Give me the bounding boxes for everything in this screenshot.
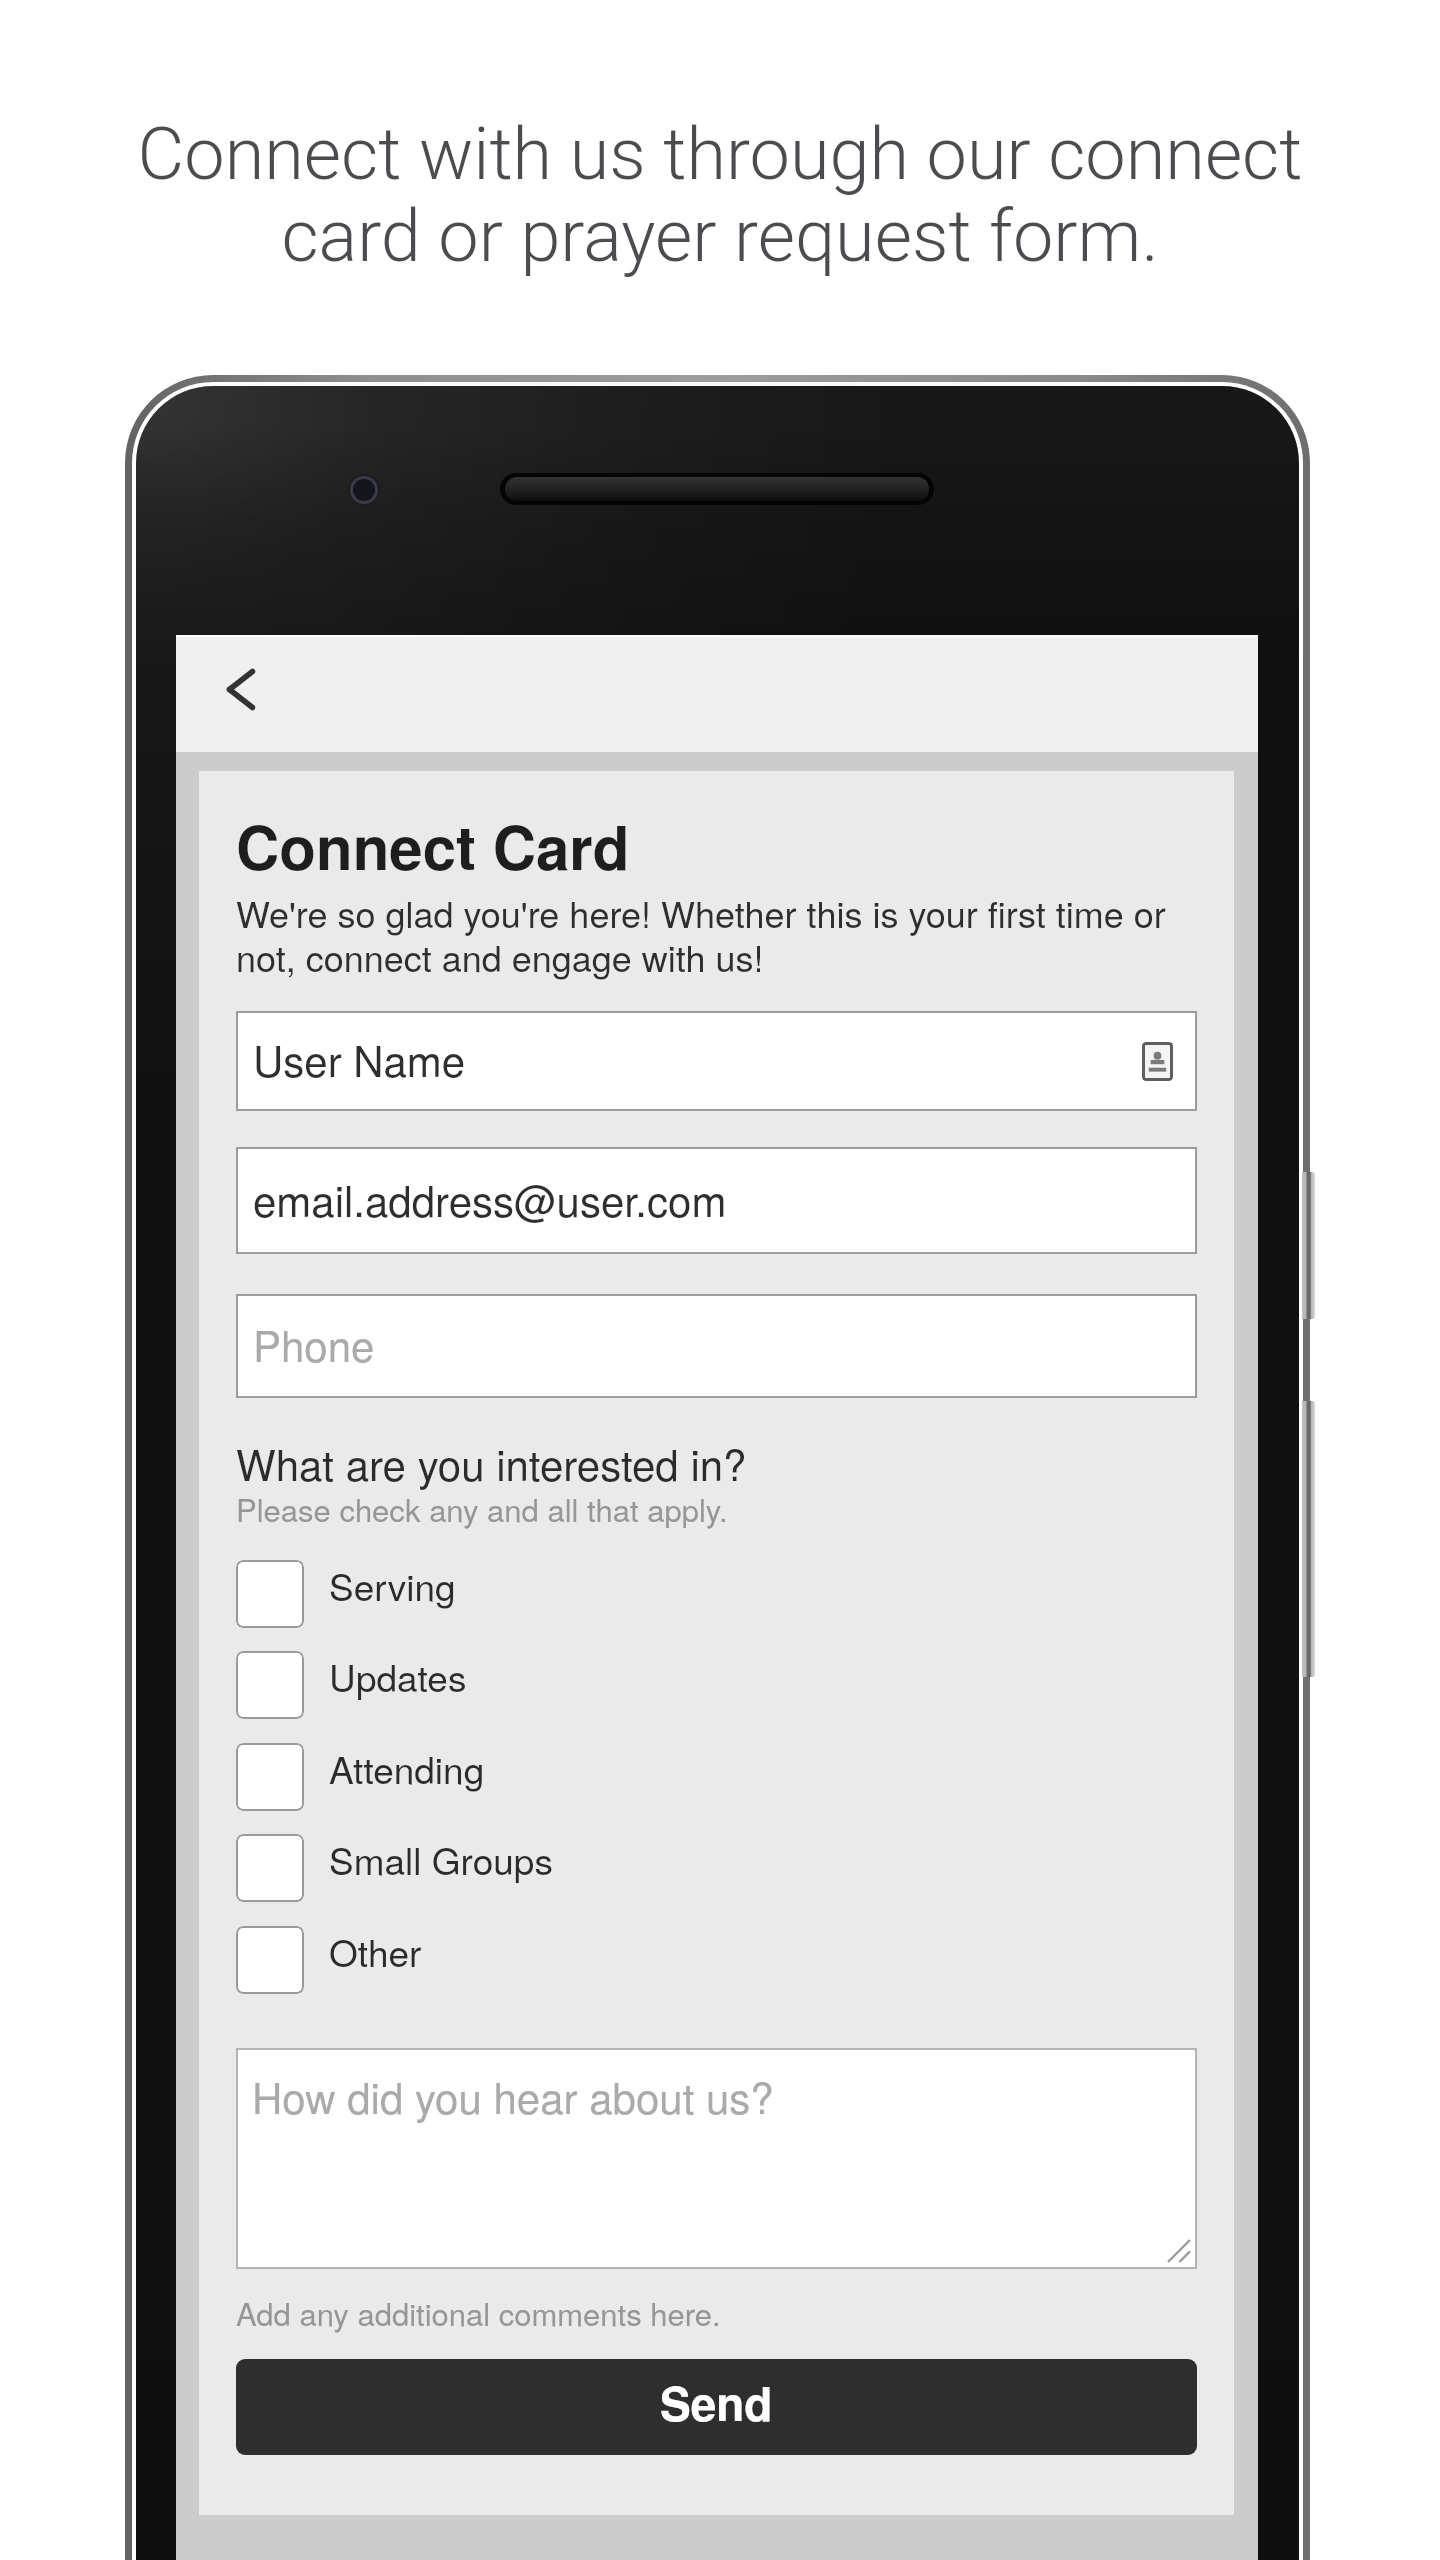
staticText: User Name [253,1029,466,1089]
button[interactable]: Phone [236,1294,1197,1398]
button[interactable]: Updates [236,1651,1197,1719]
staticText: Connect with us through our connect card… [66,112,1374,278]
button[interactable]: Small Groups [236,1834,1197,1902]
staticText: How did you hear about us? [252,2066,774,2126]
staticText: Add any additional comments here. [236,2290,721,2334]
staticText: We're so glad you're here! Whether this … [236,887,1197,982]
staticText: Small Groups [329,1833,553,1886]
button[interactable]: Serving [236,1560,1197,1628]
button[interactable]: How did you hear about us? [236,2048,1197,2269]
staticText: Attending [329,1742,485,1795]
staticText: Please check any and all that apply. [236,1486,728,1530]
staticText: Send [660,2369,773,2435]
staticText: Phone [253,1314,375,1374]
button[interactable]: Back [187,635,295,743]
staticText: email.address@user.com [253,1169,727,1229]
staticText: Connect Card [236,802,630,888]
button[interactable]: Other [236,1926,1197,1994]
button[interactable]: User Name [236,1011,1197,1111]
staticText: Other [329,1925,422,1978]
staticText: Updates [329,1650,467,1703]
button[interactable]: email.address@user.com [236,1147,1197,1254]
staticText: What are you interested in? [236,1433,747,1493]
button[interactable]: Send [236,2359,1197,2455]
button[interactable]: Attending [236,1743,1197,1811]
other: Choose contact [1142,1042,1173,1081]
staticText: Serving [329,1559,456,1612]
